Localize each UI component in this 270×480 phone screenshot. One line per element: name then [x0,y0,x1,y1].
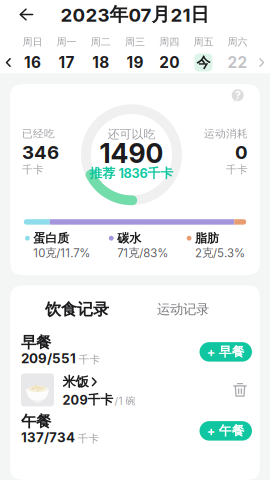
staticText: 71克/83% [117,246,168,260]
staticText: + 午餐 [207,423,245,439]
staticText: 17 [59,53,75,72]
staticText: 2023年07月21日 [60,3,209,26]
button[interactable]: Previous week [1,53,15,71]
staticText: 千卡 [77,432,99,445]
button[interactable]: 16 [15,53,49,71]
staticText: 周一 [57,36,77,48]
button[interactable]: 运动记录 [133,301,233,317]
button[interactable]: 饮食记录 [21,301,133,317]
staticText: 周五 [193,36,213,48]
button[interactable]: Back [10,1,42,27]
staticText: 周六 [228,36,248,48]
staticText: 千卡 [226,163,248,176]
staticText: + 早餐 [207,344,245,360]
staticText: 千卡 [78,353,100,366]
staticText: 今 [196,54,210,71]
staticText: 137/734 [21,429,75,445]
staticText: 19 [126,53,143,72]
button[interactable]: 20 [152,53,186,71]
staticText: 346 [22,141,59,163]
staticText: 米饭 [62,373,88,390]
staticText: 已经吃 [22,127,55,140]
staticText: 16 [24,53,41,72]
staticText: 午餐 [21,412,51,431]
button[interactable]: 18 [84,53,118,71]
staticText: 10克/11.7% [33,246,90,260]
staticText: 还可以吃 [107,127,155,142]
staticText: 周四 [159,36,179,48]
staticText: 碳水 [117,231,141,246]
staticText: /1 碗 [114,395,135,407]
button[interactable]: 22 [220,53,255,71]
staticText: 饮食记录 [45,299,109,319]
button[interactable]: + 早餐 [199,342,252,362]
button[interactable]: Next week [255,53,269,71]
staticText: 22 [228,53,248,72]
staticText: 2克/5.3% [195,246,245,260]
staticText: 早餐 [21,333,51,352]
staticText: 0 [235,141,248,163]
staticText: 脂肪 [195,231,219,246]
staticText: 蛋白质 [33,231,69,246]
staticText: 20 [159,53,179,72]
staticText: ? [235,89,241,102]
staticText: 周三 [125,36,145,48]
staticText: 千卡 [22,163,44,176]
button[interactable]: 19 [118,53,152,71]
button[interactable]: Delete [228,378,252,402]
button[interactable]: + 午餐 [199,421,252,441]
button[interactable]: Help [230,88,246,104]
button[interactable]: 今 [186,53,220,71]
staticText: 209/551 [21,350,76,366]
staticText: 周日 [22,36,42,48]
staticText: 运动消耗 [204,127,248,140]
staticText: 209千卡 [62,392,113,408]
staticText: 周二 [91,36,111,48]
staticText: 运动记录 [157,301,209,318]
button[interactable]: 17 [49,53,84,71]
staticText: 1490 [99,137,163,169]
staticText: 推荐 1836千卡 [89,165,173,181]
staticText: 18 [92,53,109,72]
